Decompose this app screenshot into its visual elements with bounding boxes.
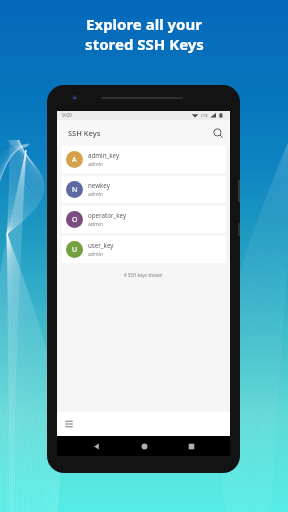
staticText: newkey	[88, 181, 110, 189]
staticText: O	[72, 215, 78, 225]
button[interactable]: U	[61, 236, 226, 263]
staticText: admin	[88, 221, 103, 228]
button[interactable]: Back	[88, 438, 104, 454]
staticText: Explore all your	[86, 14, 202, 34]
button[interactable]: Menu	[61, 416, 77, 432]
staticText: stored SSH Keys	[85, 34, 204, 54]
staticText: user_key	[88, 241, 114, 249]
button[interactable]: Home	[136, 438, 152, 454]
staticText: U	[72, 245, 78, 255]
staticText: operator_key	[88, 211, 127, 219]
button[interactable]: N	[61, 176, 226, 203]
staticText: N	[72, 185, 78, 195]
button[interactable]: O	[61, 206, 226, 233]
staticText: admin_key	[88, 151, 120, 159]
staticText: admin	[88, 161, 103, 168]
staticText: admin	[88, 251, 103, 258]
button[interactable]: Search	[208, 123, 228, 143]
staticText: 9:00	[62, 112, 72, 119]
staticText: SSH Keys	[68, 128, 101, 138]
staticText: admin	[88, 191, 103, 198]
staticText: 4 SSH keys shown	[124, 272, 163, 278]
button[interactable]: Recents	[183, 438, 199, 454]
staticText: A	[72, 155, 77, 165]
button[interactable]: A	[61, 146, 226, 173]
staticText: LTE	[201, 113, 208, 119]
